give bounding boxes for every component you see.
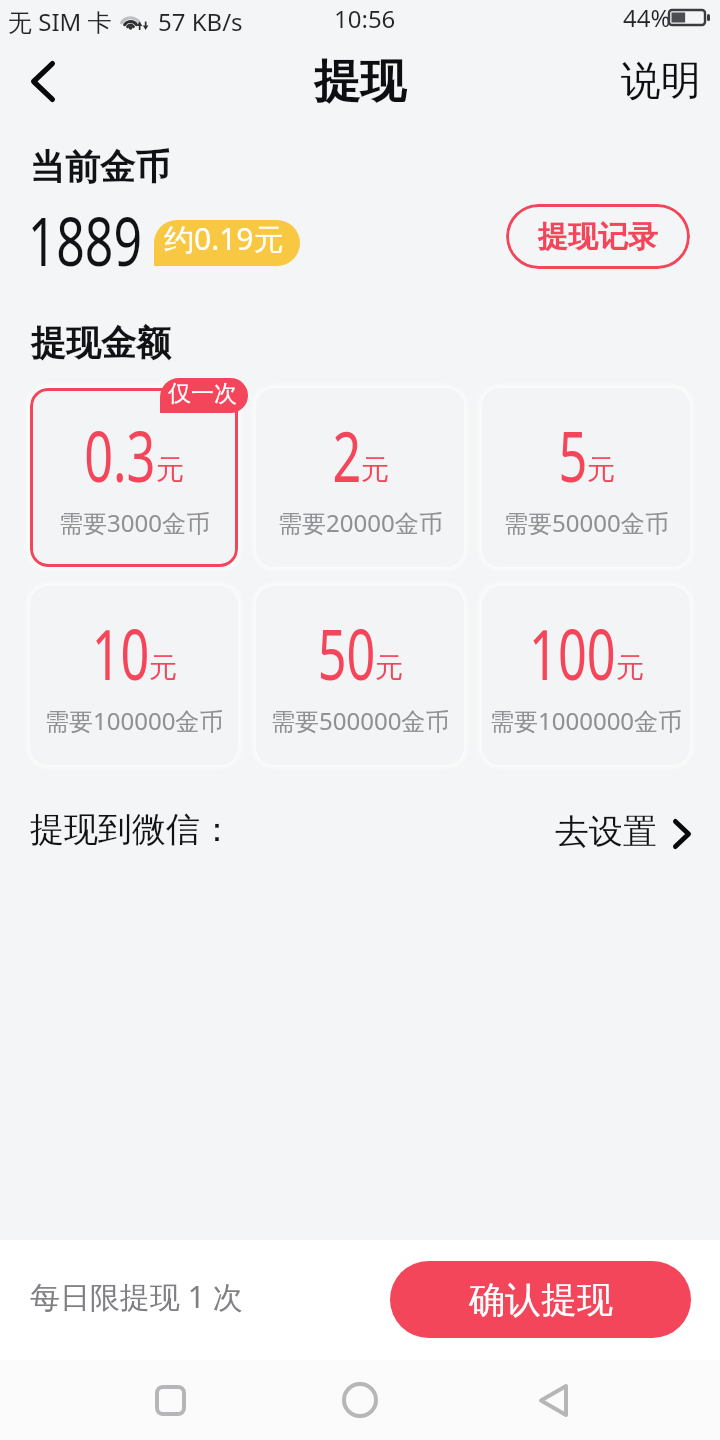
staticText: 50: [318, 606, 375, 700]
button[interactable]: 0.3: [30, 388, 238, 567]
staticText: 44%: [623, 1, 671, 34]
staticText: 去设置: [555, 810, 657, 853]
staticText: 5: [558, 408, 588, 502]
staticText: 10: [92, 606, 149, 700]
button[interactable]: 提现记录: [506, 204, 690, 269]
staticText: 元: [361, 452, 389, 487]
staticText: 10:56: [334, 2, 396, 35]
button[interactable]: Back: [493, 1360, 613, 1440]
staticText: 元: [375, 650, 403, 685]
staticText: 约0.19元: [164, 220, 284, 259]
staticText: 提现记录: [538, 218, 658, 256]
button[interactable]: Home: [300, 1360, 420, 1440]
staticText: 元: [156, 452, 184, 487]
staticText: 需要3000金币: [59, 506, 210, 539]
staticText: 需要500000金币: [271, 704, 450, 737]
staticText: 每日限提现 1 次: [30, 1276, 243, 1317]
staticText: 元: [616, 650, 644, 685]
staticText: 确认提现: [469, 1277, 613, 1322]
staticText: 说明: [621, 55, 701, 105]
staticText: 100: [529, 606, 616, 700]
staticText: 2: [332, 408, 362, 502]
staticText: 需要20000金币: [278, 506, 443, 539]
staticText: 提现到微信：: [30, 808, 234, 851]
button[interactable]: 2: [256, 388, 464, 567]
staticText: 当前金币: [30, 145, 170, 189]
button[interactable]: 去设置: [547, 802, 699, 861]
staticText: 元: [587, 452, 615, 487]
button[interactable]: 5: [482, 388, 690, 567]
button[interactable]: Recent apps: [110, 1360, 230, 1440]
staticText: 1889: [28, 193, 142, 286]
staticText: 提现: [314, 53, 406, 111]
staticText: 需要1000000金币: [490, 704, 683, 737]
staticText: 57 KB/s: [158, 5, 243, 38]
button[interactable]: 100: [482, 586, 690, 765]
button[interactable]: 确认提现: [390, 1261, 691, 1338]
button[interactable]: 50: [256, 586, 464, 765]
staticText: 需要100000金币: [45, 704, 224, 737]
button[interactable]: 说明: [606, 39, 716, 121]
staticText: 仅一次: [168, 379, 237, 408]
button[interactable]: 10: [30, 586, 238, 765]
staticText: 提现金额: [31, 321, 171, 365]
staticText: 需要50000金币: [504, 506, 669, 539]
staticText: 0.3: [84, 408, 156, 502]
button[interactable]: Back: [6, 40, 80, 122]
staticText: 元: [149, 650, 177, 685]
staticText: 无 SIM 卡: [8, 5, 112, 38]
